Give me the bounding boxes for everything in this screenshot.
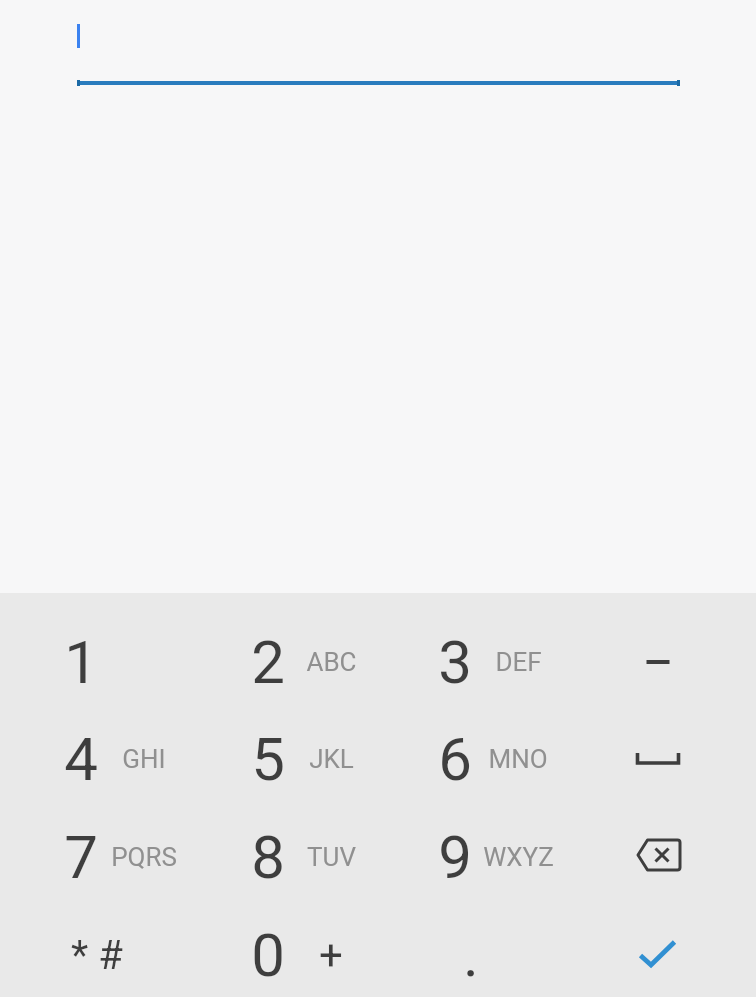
- button[interactable]: 6: [378, 710, 565, 808]
- staticText: ABC: [306, 647, 357, 677]
- staticText: .: [463, 920, 479, 990]
- button[interactable]: Space: [564, 710, 751, 808]
- button[interactable]: .: [378, 906, 565, 997]
- staticText: 6: [438, 724, 472, 794]
- button[interactable]: 0: [191, 906, 378, 997]
- staticText: 3: [438, 627, 472, 697]
- staticText: 7: [64, 822, 98, 892]
- button[interactable]: 5: [191, 710, 378, 808]
- staticText: +: [319, 931, 343, 980]
- button[interactable]: 9: [378, 808, 565, 906]
- staticText: 4: [64, 724, 98, 794]
- button[interactable]: 8: [191, 808, 378, 906]
- button[interactable]: 7: [4, 808, 191, 906]
- button[interactable]: 3: [378, 593, 565, 710]
- staticText: DEF: [495, 647, 542, 677]
- staticText: * #: [71, 932, 123, 979]
- staticText: 5: [251, 724, 285, 794]
- button[interactable]: 1: [4, 593, 191, 710]
- button[interactable]: Text field: [77, 18, 679, 86]
- button[interactable]: Backspace: [564, 808, 751, 906]
- button[interactable]: 4: [4, 710, 191, 808]
- button[interactable]: Minus: [564, 593, 751, 710]
- staticText: WXYZ: [483, 842, 554, 872]
- button[interactable]: 2: [191, 593, 378, 710]
- button[interactable]: Enter: [564, 906, 751, 997]
- staticText: 9: [438, 822, 472, 892]
- staticText: JKL: [309, 744, 354, 774]
- staticText: MNO: [488, 744, 548, 774]
- staticText: 1: [64, 627, 98, 697]
- staticText: GHI: [122, 744, 166, 774]
- staticText: 0: [251, 920, 285, 990]
- staticText: 8: [251, 822, 285, 892]
- staticText: TUV: [307, 842, 356, 872]
- staticText: 2: [251, 627, 285, 697]
- button[interactable]: * #: [4, 906, 191, 997]
- staticText: PQRS: [111, 842, 177, 872]
